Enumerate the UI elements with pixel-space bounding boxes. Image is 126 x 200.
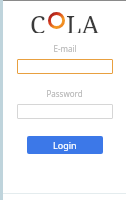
staticText: Login [53,139,77,151]
staticText: Password [46,88,83,99]
button[interactable] [17,59,113,74]
staticText: C [30,7,46,33]
staticText: E-mail [53,43,77,54]
staticText: LA [66,7,100,33]
button[interactable] [17,104,113,119]
button[interactable]: Login [27,136,103,154]
